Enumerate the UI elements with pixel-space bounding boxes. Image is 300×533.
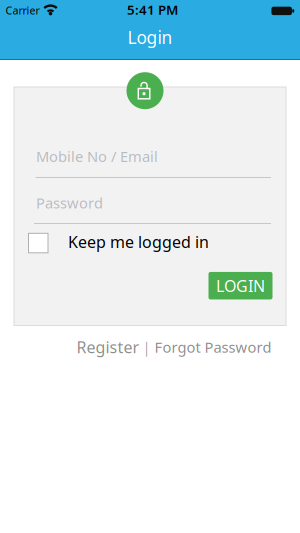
button[interactable]: Register <box>76 336 139 358</box>
staticText: | <box>142 337 150 357</box>
button[interactable]: Keep me logged in <box>28 230 209 253</box>
button[interactable]: Forgot Password <box>154 337 271 357</box>
staticText: Keep me logged in <box>68 231 209 252</box>
staticText: Mobile No / Email <box>36 146 158 166</box>
staticText: Register <box>76 336 139 358</box>
staticText: LOGIN <box>216 275 265 296</box>
button[interactable]: LOGIN <box>208 272 272 299</box>
staticText: Forgot Password <box>154 337 271 357</box>
staticText: Login <box>127 26 172 49</box>
staticText: 5:41 PM <box>127 1 178 18</box>
staticText: Carrier <box>6 3 40 17</box>
staticText: Password <box>36 193 103 212</box>
